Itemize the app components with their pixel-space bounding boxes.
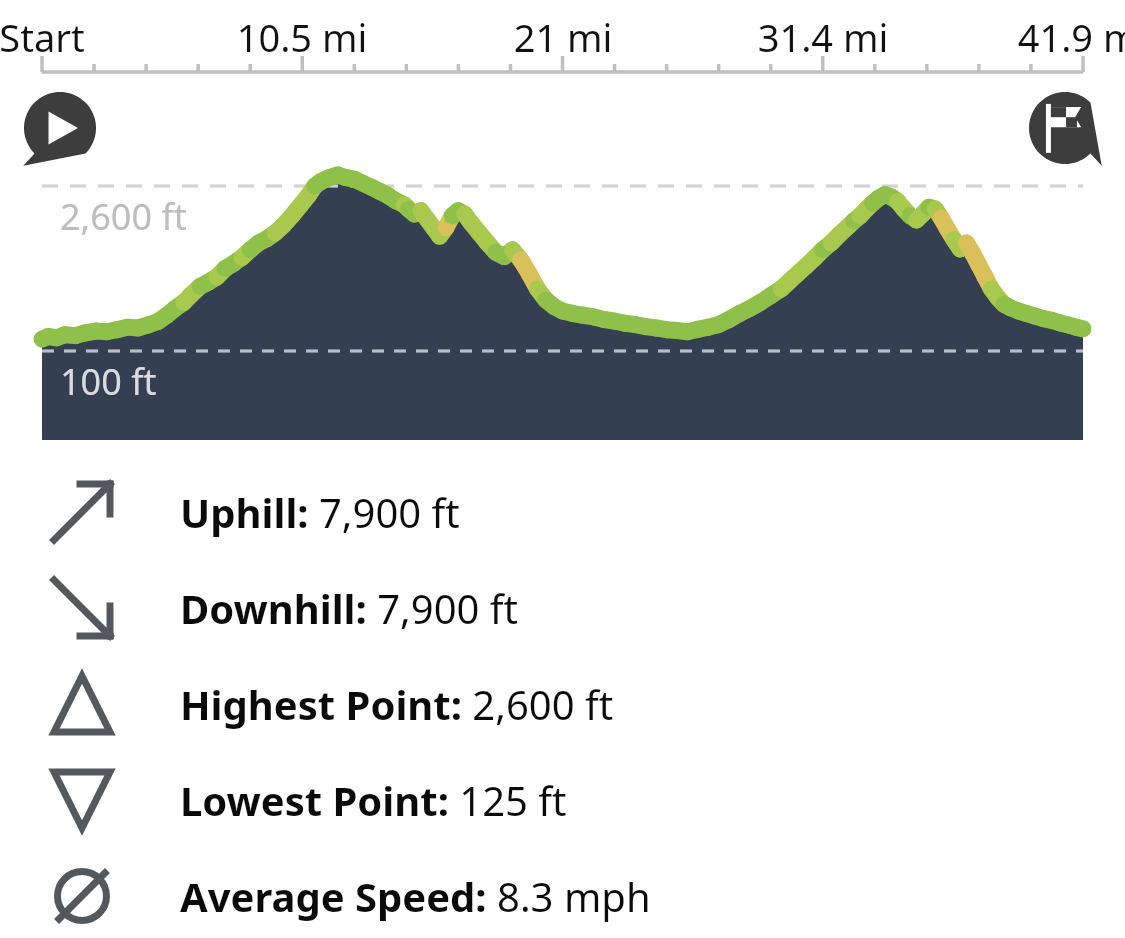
staticText: 31.4 mi bbox=[713, 11, 933, 63]
staticText: 2,600 ft bbox=[60, 192, 187, 241]
staticText: 100 ft bbox=[60, 357, 157, 406]
staticText: 41.9 mi bbox=[973, 11, 1125, 63]
staticText: Start bbox=[0, 11, 152, 63]
button[interactable]: Uphill bbox=[0, 472, 1125, 552]
staticText: Highest Point: 2,600 ft bbox=[180, 677, 614, 731]
button[interactable]: Average Speed bbox=[0, 856, 1125, 936]
staticText: Average Speed: 8.3 mph bbox=[180, 869, 651, 923]
button[interactable]: Highest Point bbox=[0, 664, 1125, 744]
button[interactable]: Downhill bbox=[0, 568, 1125, 648]
staticText: Downhill: 7,900 ft bbox=[180, 581, 518, 635]
staticText: Uphill: 7,900 ft bbox=[180, 485, 460, 539]
staticText: 21 mi bbox=[453, 11, 673, 63]
button[interactable]: Lowest Point bbox=[0, 760, 1125, 840]
staticText: 10.5 mi bbox=[192, 11, 412, 63]
staticText: Lowest Point: 125 ft bbox=[180, 773, 567, 827]
